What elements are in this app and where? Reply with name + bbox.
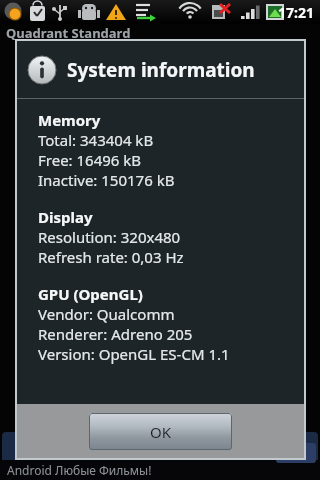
staticText: Refresh rate: 0,03 Hz [38, 247, 184, 267]
staticText: Renderer: Adreno 205 [38, 324, 193, 344]
staticText: Android Любые Фильмы! [7, 462, 152, 478]
staticText: Total: 343404 kB [38, 130, 154, 150]
staticText: 17:21 [278, 3, 314, 22]
staticText: Inactive: 150176 kB [38, 170, 175, 190]
staticText: Display [38, 207, 93, 227]
staticText: Memory [38, 110, 101, 130]
staticText: Free: 16496 kB [38, 150, 142, 170]
staticText: Quadrant Standard [6, 24, 131, 42]
staticText: Vendor: Qualcomm [38, 304, 175, 324]
staticText: OK [150, 422, 172, 442]
staticText: Version: OpenGL ES-CM 1.1 [38, 344, 230, 364]
staticText: Resolution: 320x480 [38, 227, 181, 247]
button[interactable]: OK [89, 413, 232, 450]
staticText: GPU (OpenGL) [38, 284, 143, 304]
staticText: System information [67, 57, 255, 83]
